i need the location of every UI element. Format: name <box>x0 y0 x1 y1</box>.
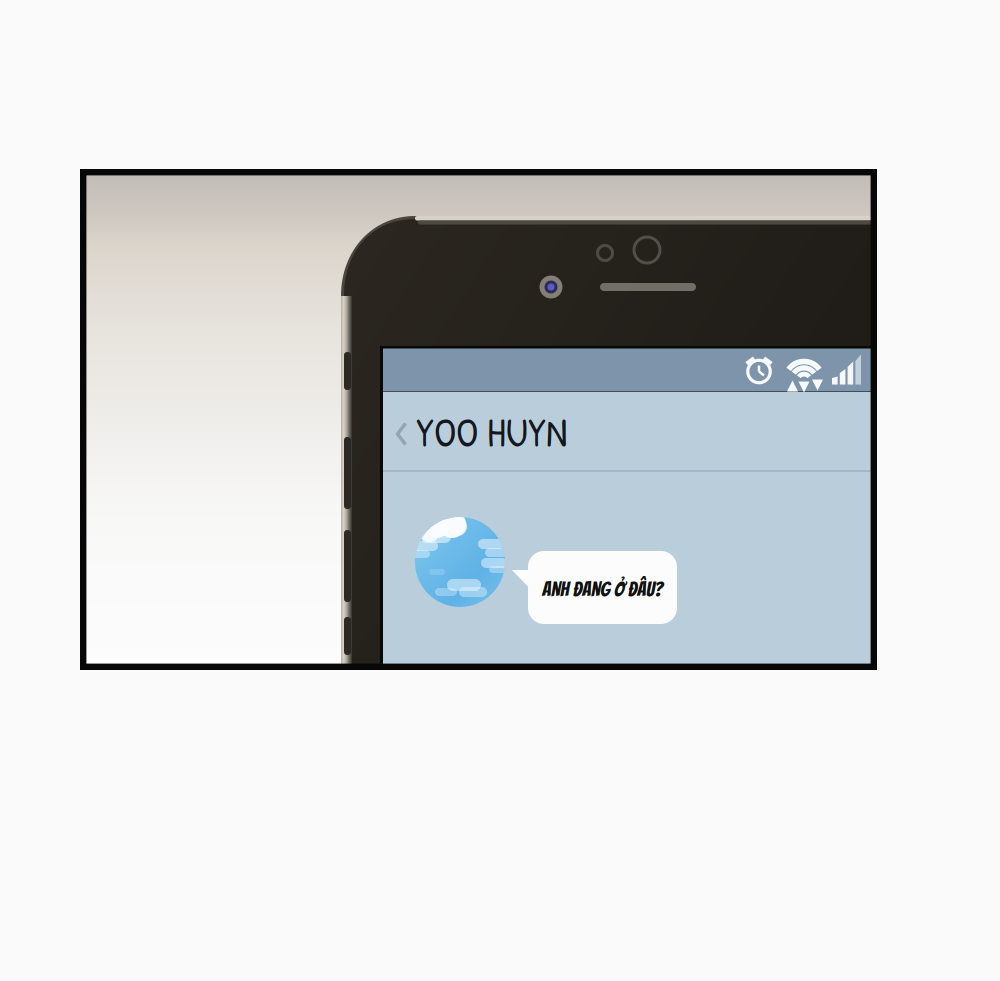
button[interactable]: YOO HUYN <box>383 392 585 472</box>
staticText: ANH ĐANG Ở ĐÂU? <box>542 579 663 600</box>
staticText: YOO HUYN <box>416 405 567 459</box>
